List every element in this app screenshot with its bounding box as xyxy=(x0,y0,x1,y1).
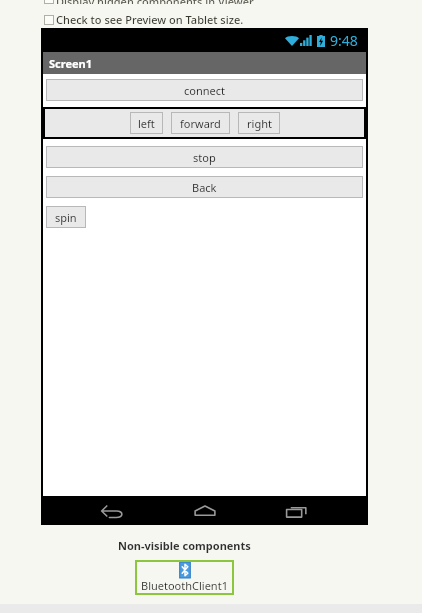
staticText: Back xyxy=(192,180,217,195)
button[interactable]: Check to see Preview on Tablet size. xyxy=(44,12,244,27)
button[interactable]: spin xyxy=(46,206,86,228)
button[interactable]: Display hidden components in Viewer xyxy=(44,0,254,4)
staticText: stop xyxy=(193,150,216,165)
staticText: left xyxy=(138,116,155,131)
button[interactable]: Home xyxy=(192,502,218,520)
staticText: forward xyxy=(180,116,221,131)
staticText: BluetoothClient1 xyxy=(141,578,228,593)
button[interactable]: BluetoothClient1 xyxy=(141,562,228,593)
button[interactable]: Recent apps xyxy=(284,502,310,520)
button[interactable]: right xyxy=(238,112,280,134)
staticText: connect xyxy=(184,83,225,98)
staticText: Display hidden components in Viewer xyxy=(56,0,254,4)
button[interactable]: Back xyxy=(99,502,125,520)
staticText: Check to see Preview on Tablet size. xyxy=(56,12,244,27)
button[interactable]: connect xyxy=(46,79,363,101)
button[interactable]: Back xyxy=(46,176,363,198)
staticText: spin xyxy=(55,210,77,225)
button[interactable]: stop xyxy=(46,146,363,168)
button[interactable]: forward xyxy=(171,112,230,134)
staticText: Non-visible components xyxy=(118,538,251,553)
staticText: Screen1 xyxy=(49,56,93,71)
staticText: 9:48 xyxy=(330,31,358,50)
button[interactable]: left xyxy=(45,109,364,137)
staticText: right xyxy=(247,116,272,131)
button[interactable]: left xyxy=(130,112,163,134)
